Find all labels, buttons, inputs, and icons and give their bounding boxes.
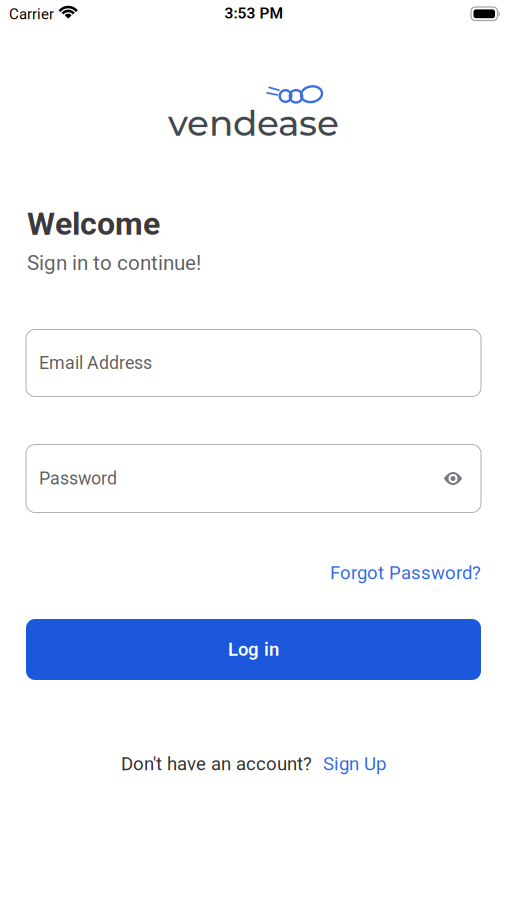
button[interactable]: Show password (438, 463, 468, 493)
button[interactable]: Log in (26, 619, 481, 680)
staticText: Don't have an account? (121, 753, 312, 775)
staticText: Password (39, 468, 117, 489)
button[interactable]: Sign Up (323, 753, 386, 775)
button[interactable]: Forgot Password? (330, 562, 481, 584)
staticText: Sign Up (323, 753, 386, 775)
staticText: Forgot Password? (330, 562, 481, 584)
staticText: Welcome (27, 205, 160, 242)
staticText: Log in (228, 639, 279, 660)
staticText: vendease (168, 101, 339, 145)
staticText: Email Address (39, 353, 152, 373)
staticText: Carrier (9, 5, 54, 23)
staticText: 3:53 PM (224, 4, 283, 22)
staticText: Sign in to continue! (27, 251, 201, 275)
